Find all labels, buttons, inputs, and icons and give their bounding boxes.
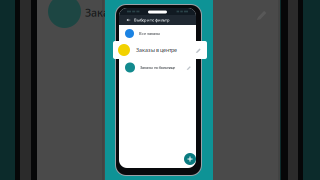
staticText: Заказы по больнице: [140, 65, 175, 70]
staticText: Зака: [85, 5, 109, 20]
button[interactable]: Add filter: [184, 153, 196, 165]
staticText: Заказы в центре: [136, 46, 177, 54]
staticText: Выберите фильтр: [134, 17, 170, 23]
button[interactable]: Заказы по больнице: [119, 60, 196, 75]
button[interactable]: Заказы в центре: [113, 41, 207, 59]
button[interactable]: Все заказы: [119, 26, 196, 41]
staticText: Все заказы: [139, 31, 160, 36]
button[interactable]: Back: [123, 15, 134, 25]
